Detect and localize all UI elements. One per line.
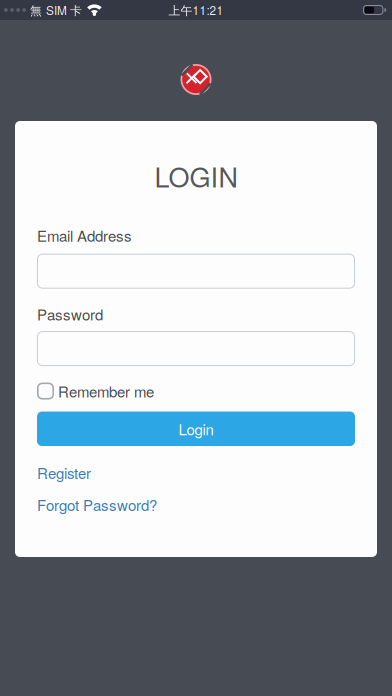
button[interactable]: Register [37,462,91,483]
staticText: 上午11:21 [168,2,223,18]
staticText: Login [178,418,213,439]
staticText: Remember me [58,381,154,401]
button[interactable]: Remember me [37,381,154,401]
staticText: Register [37,462,91,483]
button[interactable]: Password [37,331,355,366]
button[interactable]: Email Address [37,254,355,289]
button[interactable]: Login [37,411,355,446]
button[interactable]: Forgot Password? [37,494,157,515]
staticText: 無 SIM 卡 [30,2,82,18]
staticText: Password [37,304,103,324]
staticText: LOGIN [154,157,237,195]
staticText: Forgot Password? [37,494,157,515]
staticText: Email Address [37,225,132,246]
